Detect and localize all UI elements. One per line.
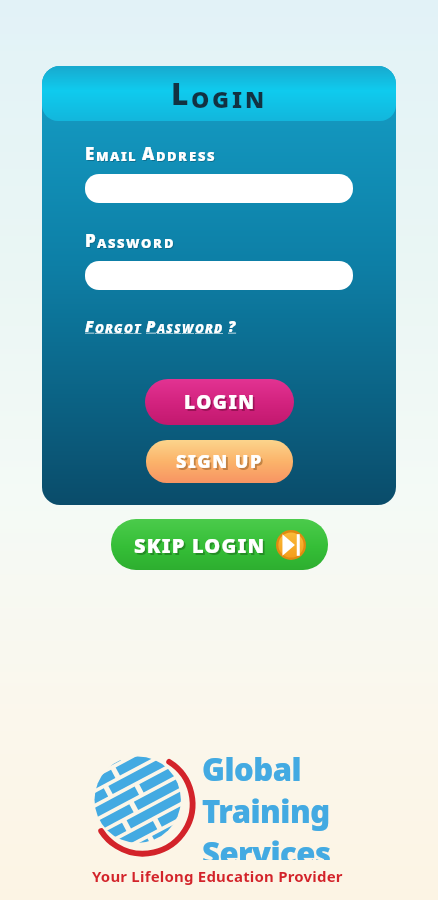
staticText: I (122, 148, 129, 166)
staticText: A (157, 320, 166, 336)
staticText: P (86, 230, 98, 253)
staticText: Training (202, 790, 330, 832)
staticText: S (174, 320, 182, 336)
staticText: R (153, 234, 164, 252)
staticText: LOGIN (184, 389, 256, 415)
staticText: E (85, 142, 96, 165)
staticText: E (86, 143, 97, 166)
button[interactable] (85, 261, 353, 290)
staticText: S (208, 148, 217, 166)
staticText: A (143, 143, 157, 166)
staticText: ? (228, 316, 237, 336)
staticText: O (95, 320, 105, 336)
staticText: D (167, 147, 178, 165)
staticText: G (212, 83, 232, 114)
staticText: R (178, 147, 189, 165)
staticText: SKIP LOGIN (136, 534, 268, 561)
staticText: D (214, 320, 224, 336)
staticText: O (124, 320, 134, 336)
staticText: N (245, 83, 267, 114)
button[interactable]: SKIP LOGIN (111, 519, 328, 570)
staticText: E (190, 148, 199, 166)
staticText: D (157, 148, 168, 166)
staticText: R (205, 320, 214, 336)
staticText: Your Lifelong Education Provider (92, 866, 343, 886)
staticText: D (168, 148, 179, 166)
staticText: D (156, 147, 167, 165)
staticText: A (110, 147, 121, 165)
staticText: R (179, 148, 190, 166)
staticText: D (164, 234, 175, 252)
staticText: A (98, 235, 109, 253)
staticText: T (134, 320, 142, 336)
staticText: Services (202, 832, 331, 860)
button[interactable] (85, 174, 353, 203)
staticText: S (118, 235, 127, 253)
staticText: A (111, 148, 122, 166)
staticText: P (146, 316, 157, 336)
staticText: S (109, 235, 118, 253)
staticText: S (198, 147, 207, 165)
staticText: P (85, 229, 97, 252)
staticText: Global (202, 748, 301, 790)
button[interactable]: SIGN UP (146, 440, 293, 483)
staticText: E (189, 147, 198, 165)
staticText: W (127, 235, 142, 253)
staticText: S (108, 234, 117, 252)
staticText: R (105, 320, 114, 336)
staticText: W (126, 234, 141, 252)
staticText: W (182, 320, 195, 336)
staticText: A (142, 142, 156, 165)
staticText: O (141, 234, 153, 252)
staticText: S (117, 234, 126, 252)
staticText: I (232, 83, 245, 114)
staticText: SIGN UP (176, 449, 263, 474)
staticText: SIGN UP (178, 451, 265, 476)
staticText: M (97, 148, 111, 166)
staticText: D (165, 235, 176, 253)
button[interactable]: LOGIN (145, 379, 294, 425)
other: Skip (276, 530, 306, 560)
button[interactable]: F (85, 316, 237, 336)
staticText: L (128, 147, 137, 165)
staticText: O (142, 235, 154, 253)
staticText: O (191, 83, 212, 114)
staticText: LOGIN (186, 391, 258, 417)
staticText: L (129, 148, 138, 166)
staticText: S (199, 148, 208, 166)
staticText: I (121, 147, 128, 165)
staticText: L (171, 73, 191, 114)
staticText: G (114, 320, 124, 336)
staticText: R (154, 235, 165, 253)
staticText: S (166, 320, 174, 336)
staticText: M (96, 147, 110, 165)
staticText: A (97, 234, 108, 252)
staticText: SKIP LOGIN (134, 532, 266, 559)
staticText: S (207, 147, 216, 165)
staticText: F (85, 316, 95, 336)
staticText: O (195, 320, 205, 336)
